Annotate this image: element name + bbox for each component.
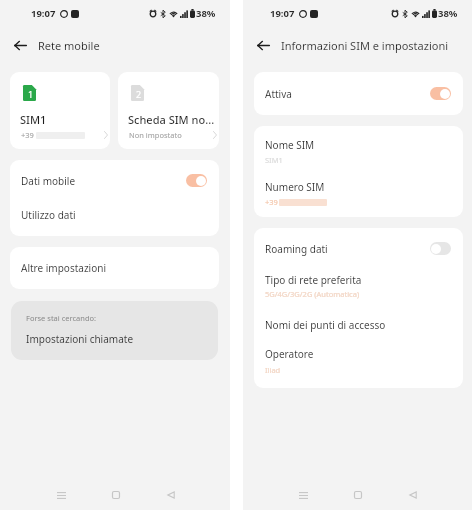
staticText: 5G/4G/3G/2G (Automatica) [265,289,360,299]
staticText: Utilizzo dati [21,208,207,222]
staticText: Informazioni SIM e impostazioni [281,38,449,53]
staticText: Operatore [265,347,314,361]
staticText: Forse stai cercando: [26,313,97,323]
staticText: Impostazioni chiamate [26,332,134,346]
button[interactable]: Tipo di rete preferita [254,264,463,308]
staticText: +39 [265,197,278,207]
button[interactable]: 2 [118,72,219,149]
button[interactable]: Numero SIM [254,171,463,217]
staticText: Numero SIM [265,180,325,194]
staticText: Non impostato [129,130,182,140]
staticText: Dati mobile [21,174,186,188]
staticText: Altre impostazioni [21,261,106,275]
button[interactable]: Attiva [254,72,463,115]
staticText: Tipo di rete preferita [265,273,362,287]
button[interactable]: Home [347,484,369,506]
staticText: +39 [21,130,34,140]
staticText: 19:07 [31,7,56,20]
staticText: Scheda SIM no... [128,112,215,127]
staticText: Nomi dei punti di accesso [265,318,451,332]
button[interactable]: Back [251,33,275,57]
button[interactable]: Forse stai cercando: [11,301,218,360]
staticText: 38% [438,7,458,20]
staticText: 38% [196,7,216,20]
button[interactable]: Home [105,484,127,506]
staticText: Rete mobile [38,38,100,53]
button[interactable]: Back [8,33,32,57]
button[interactable]: Switch on [186,174,207,187]
staticText: SIM1 [20,112,47,127]
button[interactable]: Recent apps [292,484,314,506]
button[interactable]: Recent apps [50,484,72,506]
staticText: 19:07 [270,7,295,20]
staticText: 1 [28,88,34,100]
button[interactable]: Utilizzo dati [10,198,219,236]
staticText: SIM1 [265,155,283,165]
button[interactable]: Dati mobile [10,160,219,198]
button[interactable]: Switch on [430,87,451,100]
button[interactable]: 1 [10,72,110,149]
button[interactable]: Back [160,484,182,506]
button[interactable]: Operatore [254,344,463,388]
staticText: 2 [136,88,142,100]
button[interactable]: Nome SIM [254,126,463,171]
button[interactable]: Back [402,484,424,506]
button[interactable]: Switch off [430,242,451,255]
staticText: Nome SIM [265,138,315,152]
staticText: Iliad [265,365,281,375]
button[interactable]: Nomi dei punti di accesso [254,308,463,344]
button[interactable]: Altre impostazioni [10,247,219,289]
staticText: Roaming dati [265,242,430,256]
button[interactable]: Roaming dati [254,228,463,264]
staticText: Attiva [265,87,292,101]
